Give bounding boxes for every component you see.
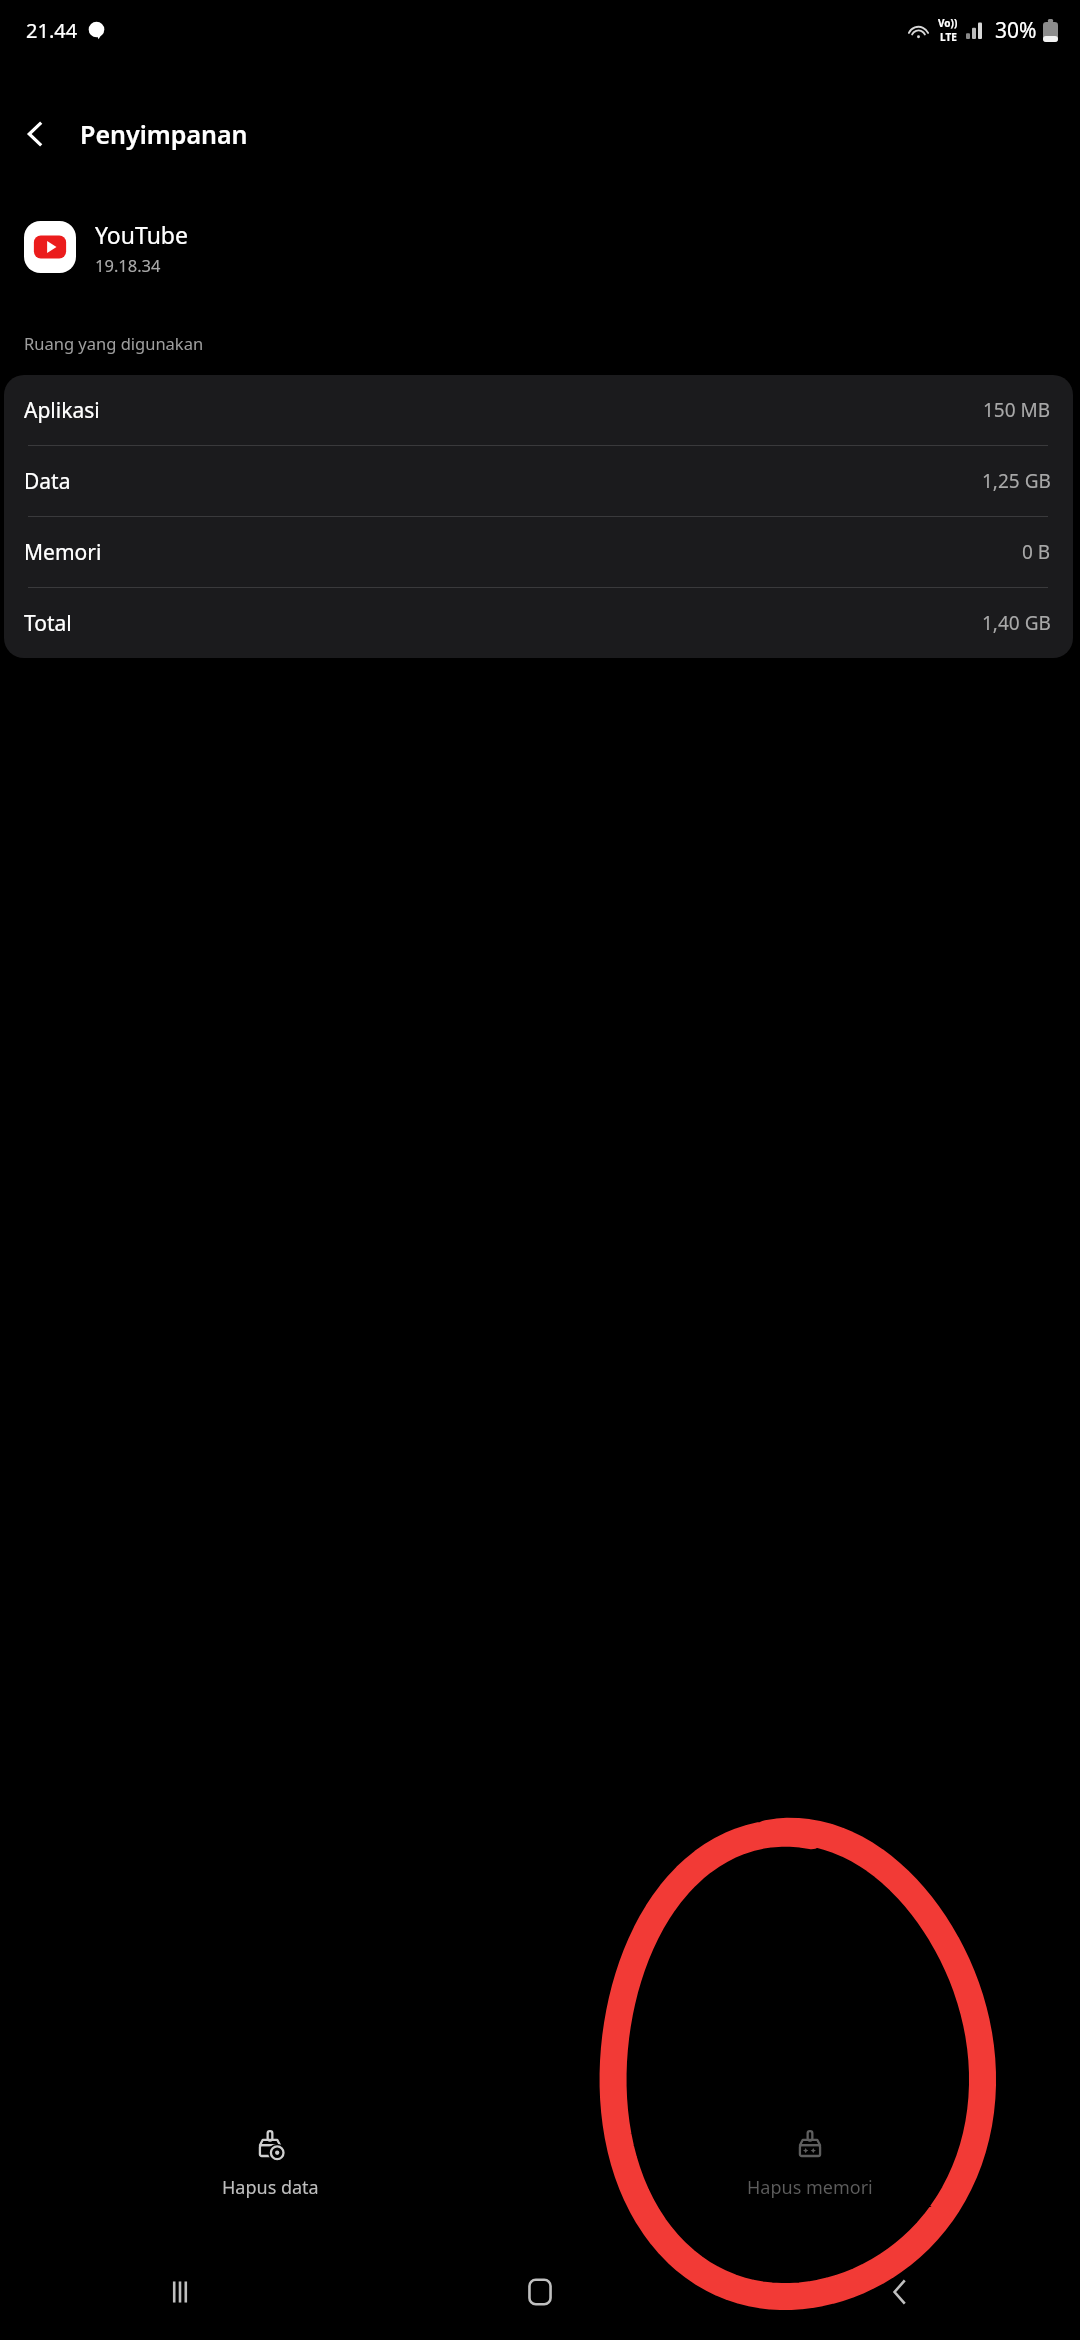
button[interactable]: Recents — [0, 2244, 360, 2340]
staticText: Aplikasi — [24, 396, 100, 425]
staticText: 21.44 — [26, 17, 78, 44]
button[interactable]: Data — [4, 446, 1073, 516]
staticText: Penyimpanan — [80, 117, 248, 151]
staticText: 30% — [995, 16, 1037, 45]
button[interactable]: Memori — [4, 517, 1073, 587]
staticText: Vo)) — [938, 16, 958, 30]
staticText: 0 B — [1022, 539, 1051, 565]
button[interactable]: Hapus memori — [540, 2123, 1080, 2206]
staticText: Memori — [24, 538, 102, 567]
button[interactable]: Aplikasi — [4, 375, 1073, 445]
button[interactable]: Back — [720, 2244, 1080, 2340]
staticText: YouTube — [95, 219, 188, 250]
staticText: Hapus data — [222, 2175, 319, 2200]
staticText: 1,40 GB — [982, 610, 1051, 636]
button[interactable]: Back — [8, 106, 64, 162]
staticText: Ruang yang digunakan — [24, 332, 204, 354]
staticText: Data — [24, 467, 71, 496]
button[interactable]: Home — [360, 2244, 720, 2340]
staticText: 19.18.34 — [95, 254, 161, 276]
staticText: Hapus memori — [747, 2175, 873, 2200]
staticText: 150 MB — [983, 397, 1051, 423]
staticText: 1,25 GB — [982, 468, 1051, 494]
button[interactable]: Hapus data — [0, 2123, 540, 2206]
staticText: LTE — [940, 30, 957, 44]
staticText: Total — [24, 609, 72, 638]
button[interactable]: Total — [4, 588, 1073, 658]
